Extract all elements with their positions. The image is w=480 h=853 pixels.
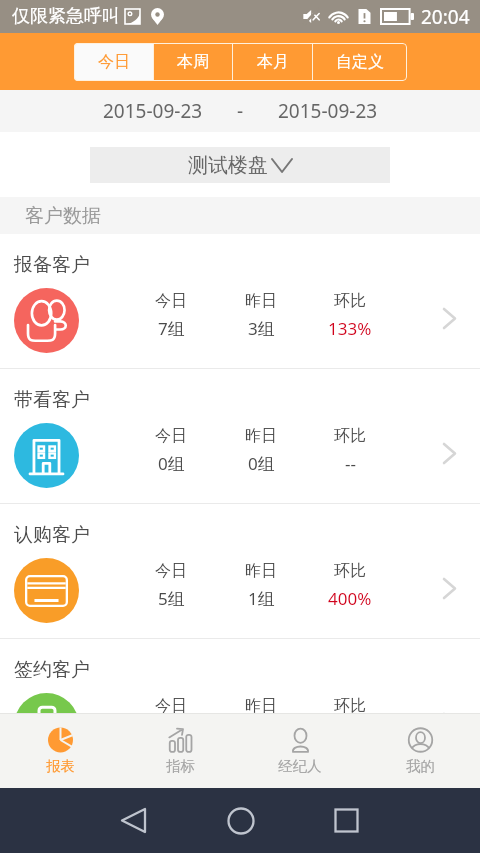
button[interactable]: 报表 — [0, 714, 120, 788]
staticText: 今日 — [155, 426, 187, 446]
button[interactable]: 签约客户 — [0, 639, 480, 713]
staticText: 今日 — [155, 696, 187, 713]
staticText: 今日 — [98, 52, 130, 72]
button[interactable]: Back — [107, 788, 160, 853]
button[interactable]: Recent apps — [320, 788, 373, 853]
button[interactable]: 2015-09-23 — [0, 90, 480, 132]
staticText: 20:04 — [421, 4, 470, 30]
staticText: 昨日 — [245, 696, 277, 713]
button[interactable]: 自定义 — [313, 43, 407, 81]
staticText: 测试楼盘 — [188, 153, 268, 178]
staticText: 环比 — [334, 696, 366, 713]
staticText: 我的 — [406, 757, 435, 775]
button[interactable]: 本周 — [154, 43, 232, 81]
staticText: 环比 — [334, 426, 366, 446]
staticText: 仅限紧急呼叫 — [12, 5, 120, 28]
staticText: 昨日 — [245, 561, 277, 581]
staticText: 经纪人 — [278, 757, 322, 775]
staticText: 报表 — [46, 757, 75, 775]
staticText: 2015-09-23 — [278, 98, 378, 124]
staticText: -- — [345, 452, 356, 475]
staticText: 1组 — [248, 587, 275, 610]
staticText: 客户数据 — [25, 204, 101, 228]
staticText: 7组 — [158, 317, 185, 340]
staticText: 今日 — [155, 561, 187, 581]
button[interactable]: 我的 — [360, 714, 480, 788]
staticText: 400% — [328, 587, 372, 610]
button[interactable]: 今日 — [74, 43, 153, 81]
staticText: 自定义 — [336, 52, 384, 72]
staticText: 签约客户 — [14, 658, 90, 682]
staticText: 0组 — [248, 452, 275, 475]
staticText: 本周 — [177, 52, 209, 72]
button[interactable]: 认购客户 — [0, 504, 480, 638]
staticText: 环比 — [334, 291, 366, 311]
staticText: 2015-09-23 — [103, 98, 203, 124]
button[interactable]: 经纪人 — [240, 714, 360, 788]
staticText: 5组 — [158, 587, 185, 610]
staticText: 0组 — [158, 452, 185, 475]
staticText: 带看客户 — [14, 388, 90, 412]
staticText: 本月 — [257, 52, 289, 72]
staticText: 指标 — [166, 757, 195, 775]
staticText: 昨日 — [245, 426, 277, 446]
button[interactable]: 指标 — [120, 714, 240, 788]
staticText: - — [237, 98, 244, 124]
staticText: 133% — [328, 317, 372, 340]
staticText: 3组 — [248, 317, 275, 340]
staticText: 认购客户 — [14, 523, 90, 547]
button[interactable]: 本月 — [233, 43, 312, 81]
button[interactable]: 报备客户 — [0, 234, 480, 368]
staticText: 今日 — [155, 291, 187, 311]
button[interactable]: 带看客户 — [0, 369, 480, 503]
staticText: 昨日 — [245, 291, 277, 311]
button[interactable]: 测试楼盘 — [90, 147, 390, 183]
staticText: 环比 — [334, 561, 366, 581]
staticText: 报备客户 — [14, 253, 90, 277]
button[interactable]: Home — [214, 788, 267, 853]
